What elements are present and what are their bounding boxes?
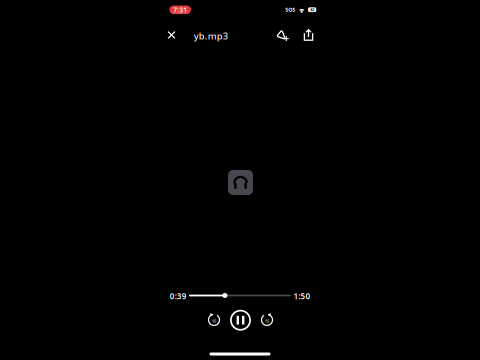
staticText: 1:50 bbox=[293, 291, 310, 301]
staticText: 15 bbox=[265, 318, 269, 324]
staticText: 15 bbox=[212, 318, 216, 324]
button[interactable]: Close bbox=[159, 23, 183, 47]
staticText: SOS bbox=[285, 6, 295, 13]
staticText: 82 bbox=[310, 7, 314, 12]
button[interactable]: Share bbox=[296, 23, 320, 47]
button[interactable]: Skip back 15 seconds bbox=[201, 307, 227, 333]
button[interactable]: Pause bbox=[227, 307, 253, 333]
button[interactable]: Add to playlist bbox=[269, 23, 293, 47]
staticText: 0:39 bbox=[170, 291, 187, 301]
staticText: yb.mp3 bbox=[194, 30, 228, 42]
staticText: 7:31 bbox=[173, 5, 187, 14]
button[interactable]: Skip forward 15 seconds bbox=[254, 307, 280, 333]
